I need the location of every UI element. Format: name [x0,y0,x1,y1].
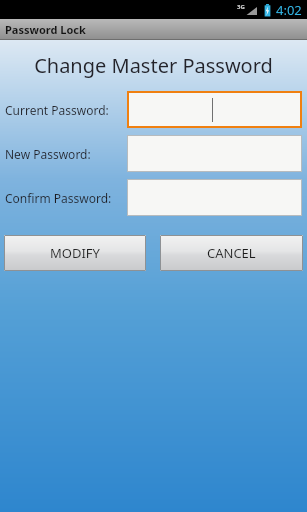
staticText: MODIFY [50,244,100,262]
button[interactable]: CANCEL [160,235,303,271]
staticText: Change Master Password [0,52,307,79]
button[interactable] [127,135,302,172]
staticText: New Password: [5,146,91,162]
staticText: Confirm Password: [5,190,112,206]
staticText: 3G [237,3,245,11]
staticText: 4:02 [276,1,302,19]
staticText: Current Password: [5,102,109,118]
staticText: Password Lock [5,22,86,37]
button[interactable] [127,91,302,128]
button[interactable] [127,179,302,216]
button[interactable]: MODIFY [4,235,146,271]
staticText: CANCEL [207,244,256,262]
